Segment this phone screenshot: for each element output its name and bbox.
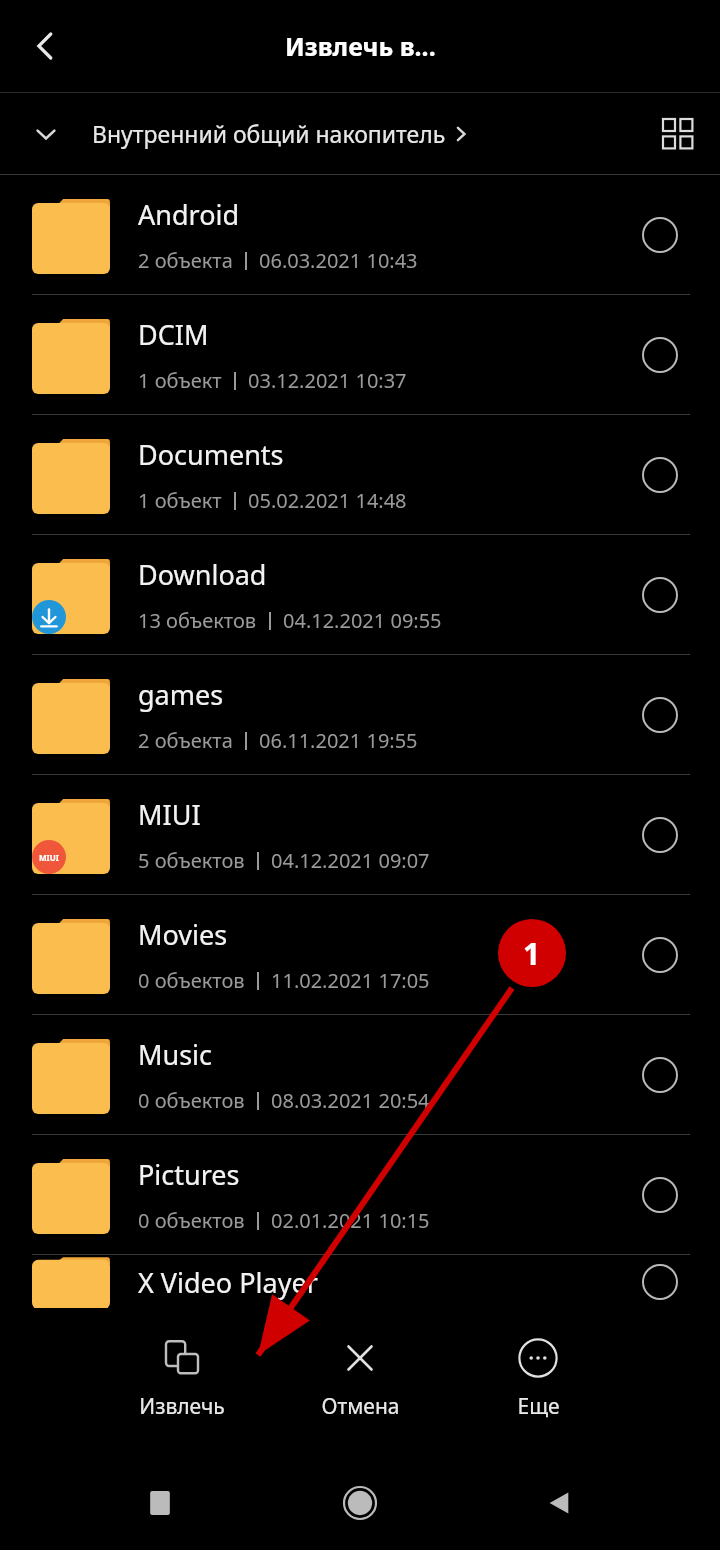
staticText: 06.03.2021 10:43	[259, 247, 418, 274]
staticText: games	[138, 676, 224, 713]
button[interactable]: Еще	[473, 1308, 603, 1421]
button[interactable]: Выбрать Download	[632, 567, 688, 623]
button[interactable]: Извлечь	[117, 1308, 247, 1421]
staticText: 1	[523, 933, 541, 974]
staticText: 05.02.2021 14:48	[248, 487, 407, 514]
button[interactable]: Music	[0, 1015, 720, 1135]
staticText: 2 объекта	[138, 247, 233, 274]
button[interactable]: Отмена	[295, 1308, 425, 1421]
button[interactable]: Выбрать X Video Player	[632, 1255, 688, 1309]
button[interactable]: Выбрать Android	[632, 207, 688, 263]
staticText: 2 объекта	[138, 727, 233, 754]
button[interactable]: DCIM	[0, 295, 720, 415]
staticText: 0 объектов	[138, 1087, 245, 1114]
button[interactable]: Выбрать games	[632, 687, 688, 743]
button[interactable]: Download	[0, 535, 720, 655]
staticText: Movies	[138, 916, 228, 953]
button[interactable]: Внутренний общий накопитель	[92, 118, 472, 149]
button[interactable]: games	[0, 655, 720, 775]
staticText: 1 объект	[138, 367, 222, 394]
button[interactable]: Выбрать Music	[632, 1047, 688, 1103]
staticText: X Video Player	[138, 1264, 318, 1301]
button[interactable]: Назад	[0, 0, 92, 92]
staticText: 08.03.2021 20:54	[271, 1087, 430, 1114]
button[interactable]: X Video Player	[0, 1255, 720, 1309]
button[interactable]: Android	[0, 175, 720, 295]
staticText: Android	[138, 196, 240, 233]
staticText: Отмена	[321, 1392, 400, 1421]
staticText: 04.12.2021 09:07	[271, 847, 430, 874]
staticText: 04.12.2021 09:55	[283, 607, 442, 634]
staticText: Documents	[138, 436, 284, 473]
staticText: 13 объектов	[138, 607, 257, 634]
button[interactable]: MIUI	[0, 775, 720, 895]
staticText: 1 объект	[138, 487, 222, 514]
staticText: 11.02.2021 17:05	[271, 967, 430, 994]
button[interactable]: Выбрать Pictures	[632, 1167, 688, 1223]
button[interactable]: Выбрать DCIM	[632, 327, 688, 383]
button[interactable]: Назад	[520, 1463, 600, 1543]
button[interactable]: Вид сеткой	[636, 93, 720, 174]
staticText: MIUI	[138, 796, 201, 833]
staticText: 5 объектов	[138, 847, 245, 874]
staticText: 03.12.2021 10:37	[248, 367, 407, 394]
staticText: Music	[138, 1036, 213, 1073]
button[interactable]: Pictures	[0, 1135, 720, 1255]
staticText: 02.01.2021 10:15	[271, 1207, 430, 1234]
staticText: Извлечь в...	[285, 29, 436, 63]
staticText: Download	[138, 556, 267, 593]
staticText: Pictures	[138, 1156, 240, 1193]
button[interactable]: Выбрать Documents	[632, 447, 688, 503]
staticText: DCIM	[138, 316, 209, 353]
staticText: 0 объектов	[138, 967, 245, 994]
staticText: 0 объектов	[138, 1207, 245, 1234]
button[interactable]: Movies	[0, 895, 720, 1015]
staticText: MIUI	[39, 852, 59, 863]
staticText: Извлечь	[139, 1392, 225, 1421]
staticText: Внутренний общий накопитель	[92, 118, 446, 149]
button[interactable]: Выбрать Movies	[632, 927, 688, 983]
button[interactable]: Documents	[0, 415, 720, 535]
button[interactable]: Главный экран	[320, 1463, 400, 1543]
staticText: 06.11.2021 19:55	[259, 727, 418, 754]
button[interactable]: Развернуть	[0, 93, 92, 174]
staticText: Еще	[517, 1392, 560, 1421]
button[interactable]: Выбрать MIUI	[632, 807, 688, 863]
button[interactable]: Недавние	[120, 1463, 200, 1543]
